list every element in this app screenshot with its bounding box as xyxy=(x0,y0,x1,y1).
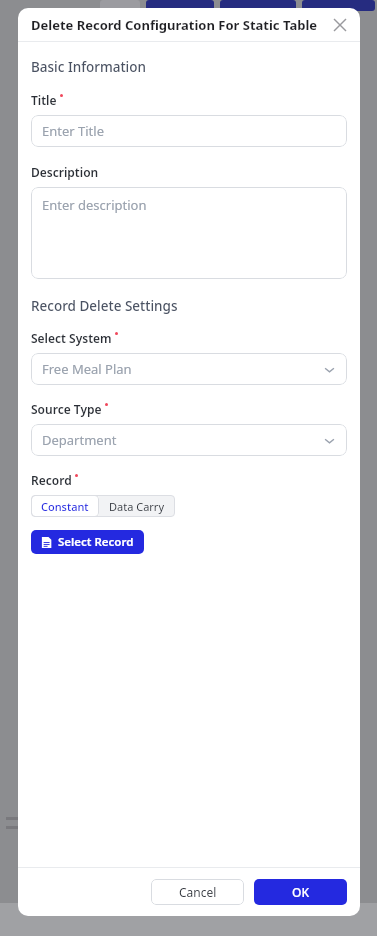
staticText: Cancel xyxy=(179,884,217,900)
staticText: Delete Record Configuration For Static T… xyxy=(31,16,318,34)
staticText: Select Record xyxy=(58,534,134,550)
staticText: Record xyxy=(31,472,72,488)
button[interactable]: Close dialog xyxy=(329,14,351,36)
staticText: Department xyxy=(42,431,117,449)
button[interactable]: Department xyxy=(31,424,347,456)
staticText: Record Delete Settings xyxy=(31,297,178,315)
staticText: Basic Information xyxy=(31,58,146,76)
button[interactable]: Enter description xyxy=(31,187,347,279)
staticText: OK xyxy=(292,884,309,900)
staticText: Constant xyxy=(41,499,89,514)
button[interactable]: Cancel xyxy=(151,879,244,905)
staticText: Enter Title xyxy=(42,122,104,140)
staticText: Source Type xyxy=(31,401,102,417)
button[interactable]: Data Carry xyxy=(99,495,175,517)
button[interactable]: OK xyxy=(254,879,347,905)
staticText: Select System xyxy=(31,330,112,346)
button[interactable]: Free Meal Plan xyxy=(31,353,347,385)
staticText: Title xyxy=(31,92,57,108)
staticText: Enter description xyxy=(42,196,147,214)
button[interactable]: Select Record xyxy=(31,530,144,554)
staticText: Data Carry xyxy=(109,499,165,514)
staticText: Free Meal Plan xyxy=(42,360,132,378)
button[interactable]: Constant xyxy=(31,495,99,517)
button[interactable]: Enter Title xyxy=(31,115,347,147)
staticText: Description xyxy=(31,164,99,180)
